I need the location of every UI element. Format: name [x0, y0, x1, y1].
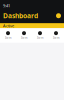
staticText: Item: [21, 36, 27, 40]
staticText: Item: [37, 36, 43, 40]
staticText: Dashboard: [3, 11, 38, 20]
staticText: Item: [5, 36, 11, 40]
staticText: Item: [53, 36, 59, 40]
staticText: 9:41: [3, 3, 10, 8]
staticText: Active: [3, 23, 14, 28]
